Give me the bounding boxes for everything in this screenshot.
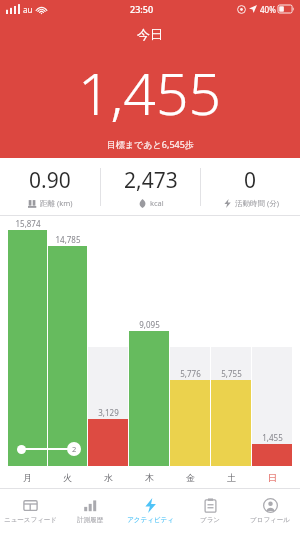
button[interactable]: プロフィール	[240, 489, 300, 533]
staticText: 15,874	[15, 218, 41, 229]
button[interactable]: 0	[201, 158, 300, 216]
staticText: 3,129	[98, 407, 119, 418]
staticText: 5,776	[180, 368, 201, 379]
button[interactable]: 1,455	[252, 216, 292, 466]
staticText: 23:50	[130, 3, 154, 15]
staticText: プロフィール	[250, 516, 290, 524]
staticText: 40%	[260, 4, 276, 15]
staticText: 火	[63, 472, 72, 483]
staticText: 水	[104, 472, 113, 483]
staticText: アクティビティ	[127, 516, 174, 524]
button[interactable]: ニュースフィード	[0, 489, 60, 533]
staticText: 目標まであと6,545歩	[107, 138, 194, 150]
staticText: 1,455	[78, 54, 222, 132]
button[interactable]: 15,874	[8, 216, 47, 466]
button[interactable]: アクティビティ	[120, 489, 180, 533]
staticText: 距離 (km)	[40, 198, 73, 208]
button[interactable]: 2,473	[101, 158, 200, 216]
staticText: 月	[23, 472, 32, 483]
staticText: 0.90	[29, 166, 71, 195]
button[interactable]: プラン	[180, 489, 240, 533]
button[interactable]: 0.90	[0, 158, 100, 216]
staticText: kcal	[150, 198, 164, 208]
button[interactable]: 9,095	[129, 216, 169, 466]
staticText: 0	[244, 166, 257, 195]
staticText: 14,785	[55, 234, 81, 245]
staticText: 金	[186, 472, 195, 483]
staticText: 計測履歴	[77, 516, 103, 524]
staticText: 活動時間 (分)	[235, 198, 279, 208]
staticText: プラン	[200, 516, 220, 524]
button[interactable]: 5,776	[170, 216, 210, 466]
button[interactable]: 計測履歴	[60, 489, 120, 533]
staticText: 2	[72, 444, 77, 454]
staticText: 土	[227, 472, 236, 483]
staticText: ニュースフィード	[4, 516, 57, 524]
staticText: 日	[268, 472, 277, 483]
button[interactable]: 3,129	[88, 216, 128, 466]
staticText: 今日	[137, 26, 163, 42]
staticText: au	[23, 4, 33, 15]
staticText: 1,455	[262, 432, 283, 443]
staticText: 2,473	[124, 166, 178, 195]
button[interactable]: 5,755	[211, 216, 251, 466]
button[interactable]: 14,785	[48, 216, 87, 466]
staticText: 木	[145, 472, 154, 483]
staticText: 5,755	[221, 368, 242, 379]
staticText: 9,095	[139, 319, 160, 330]
